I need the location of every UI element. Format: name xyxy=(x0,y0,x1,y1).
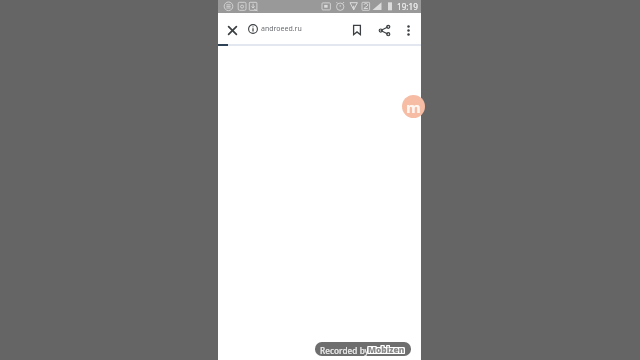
staticText: 19:19 xyxy=(397,1,418,12)
staticText: Mobizen xyxy=(368,344,405,355)
staticText: Mobizen xyxy=(369,343,406,354)
button[interactable]: More options xyxy=(396,18,420,42)
staticText: Mobizen xyxy=(368,344,405,355)
staticText: Mobizen xyxy=(367,343,404,354)
staticText: m xyxy=(406,97,421,117)
staticText: Mobizen xyxy=(367,344,404,355)
staticText: Recorded by xyxy=(320,345,369,356)
button[interactable]: Bookmark xyxy=(345,18,369,42)
button[interactable]: Share xyxy=(372,18,396,42)
staticText: Mobizen xyxy=(367,345,404,356)
staticText: Mobizen xyxy=(368,343,405,354)
button[interactable]: Close xyxy=(220,18,244,42)
button[interactable]: androeed.ru xyxy=(248,13,353,45)
staticText: Mobizen xyxy=(368,345,405,356)
staticText: Mobizen xyxy=(369,344,406,355)
staticText: Mobizen xyxy=(369,345,406,356)
staticText: androeed.ru xyxy=(261,24,302,34)
